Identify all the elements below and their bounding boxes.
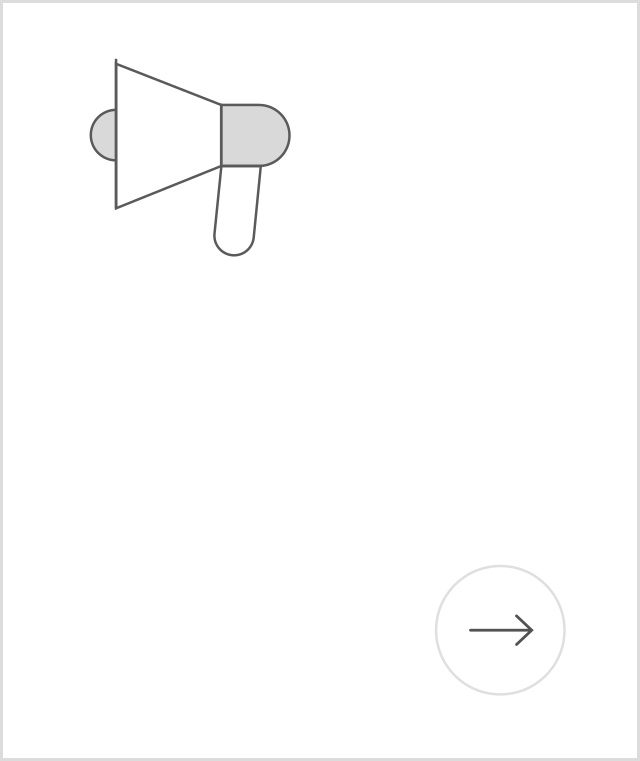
button[interactable]: Next <box>434 564 566 696</box>
